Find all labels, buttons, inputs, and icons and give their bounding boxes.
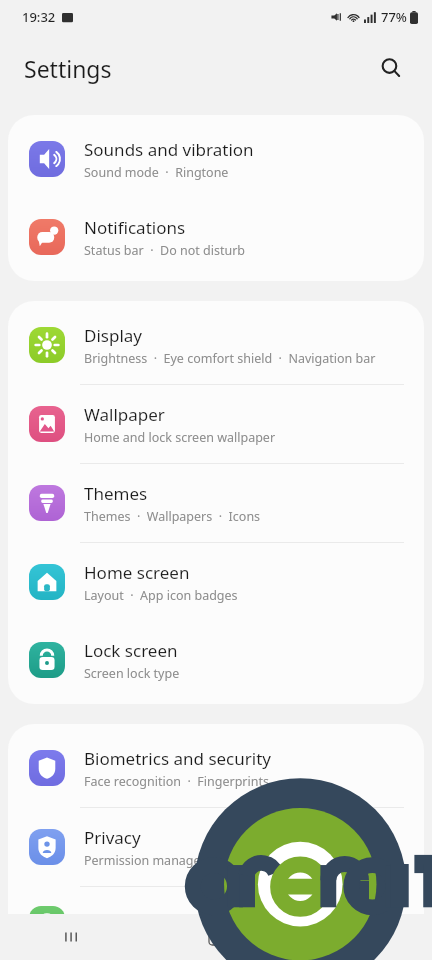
button[interactable]: Wallpaper xyxy=(8,385,424,463)
button[interactable]: Sounds and vibration xyxy=(8,120,424,198)
button[interactable]: Lock screen xyxy=(8,621,424,699)
staticText: Wallpaper xyxy=(84,403,165,426)
button[interactable]: Home xyxy=(144,914,288,960)
staticText: Themes · Wallpapers · Icons xyxy=(84,508,261,525)
button[interactable]: Themes xyxy=(8,464,424,542)
staticText: Sounds and vibration xyxy=(84,138,254,161)
staticText: Screen lock type xyxy=(84,665,180,682)
button[interactable]: Location xyxy=(8,887,424,960)
button[interactable]: Display xyxy=(8,306,424,384)
button[interactable]: Privacy xyxy=(8,808,424,886)
button[interactable]: Home screen xyxy=(8,543,424,621)
staticText: 77% xyxy=(381,8,407,26)
staticText: Home screen xyxy=(84,561,190,584)
staticText: Face recognition · Fingerprints xyxy=(84,773,269,790)
staticText: Brightness · Eye comfort shield · Naviga… xyxy=(84,350,376,367)
staticText: 19:32 xyxy=(22,8,56,26)
button[interactable]: Search settings xyxy=(370,47,412,89)
staticText: Display xyxy=(84,324,142,347)
button[interactable]: Recent apps xyxy=(0,914,144,960)
staticText: Privacy xyxy=(84,826,141,849)
staticText: Home and lock screen wallpaper xyxy=(84,429,276,446)
staticText: Lock screen xyxy=(84,639,178,662)
button[interactable]: Back xyxy=(288,914,432,960)
staticText: Themes xyxy=(84,482,148,505)
staticText: Notifications xyxy=(84,216,186,239)
staticText: Biometrics and security xyxy=(84,747,271,770)
staticText: Permission manager xyxy=(84,852,206,869)
staticText: Settings xyxy=(24,53,112,84)
staticText: Layout · App icon badges xyxy=(84,587,238,604)
staticText: Status bar · Do not disturb xyxy=(84,242,246,259)
button[interactable]: Biometrics and security xyxy=(8,729,424,807)
button[interactable]: Notifications xyxy=(8,198,424,276)
staticText: Sound mode · Ringtone xyxy=(84,164,229,181)
